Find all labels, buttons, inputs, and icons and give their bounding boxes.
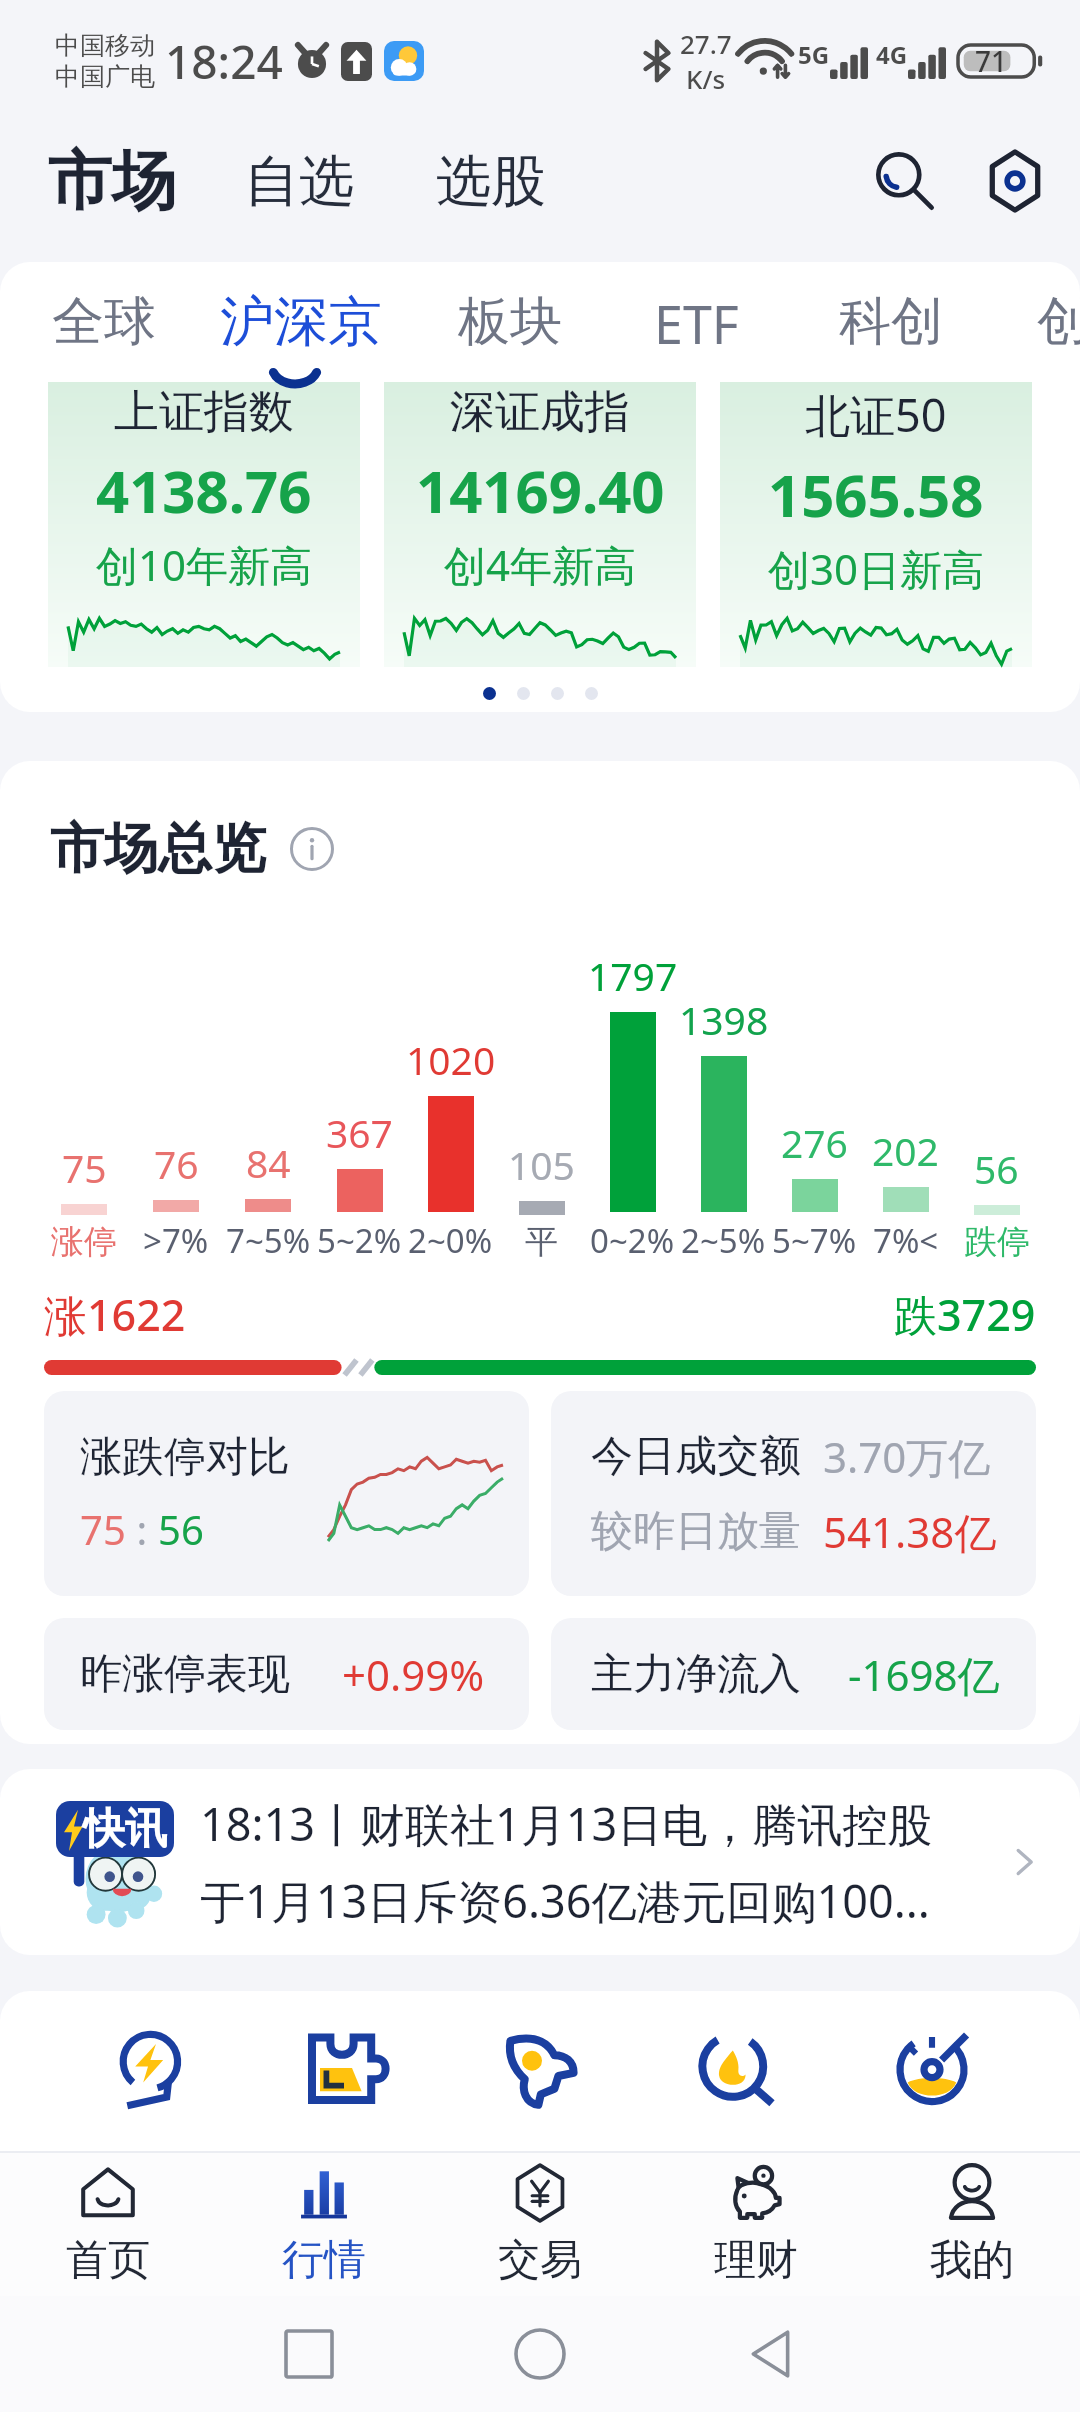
staticText: 涨跌停对比 [80, 1431, 290, 1484]
button[interactable]: Home [485, 2299, 595, 2409]
button[interactable]: Back [716, 2299, 826, 2409]
staticText: 快讯 [83, 1803, 167, 1856]
staticText: 跌3729 [894, 1285, 1036, 1344]
staticText: 中国移动 [55, 30, 155, 61]
staticText: 选股 [436, 147, 546, 216]
button[interactable]: 我的 [864, 2153, 1080, 2296]
button[interactable]: 沪深京 [220, 262, 382, 382]
staticText: 0~2% [590, 1218, 675, 1263]
button[interactable]: 涨跌停对比 [44, 1391, 529, 1596]
staticText: 全球 [52, 289, 156, 355]
button[interactable]: 市场 [48, 125, 176, 238]
staticText: 较昨日放量 [591, 1505, 801, 1558]
staticText: 首页 [66, 2234, 150, 2287]
staticText: 18:24 [165, 30, 283, 93]
staticText: 涨1622 [44, 1285, 186, 1344]
button[interactable]: 首页 [0, 2153, 216, 2296]
staticText: 我的 [930, 2234, 1014, 2287]
staticText: 27.7 [680, 26, 732, 61]
button[interactable]: Rocket [442, 1991, 638, 2151]
staticText: 昨涨停表现 [80, 1648, 290, 1701]
staticText: 541.38亿 [823, 1503, 997, 1560]
button[interactable]: 北证50 [720, 382, 1032, 667]
button[interactable]: 创 [1037, 263, 1080, 381]
staticText: 1020 [406, 1033, 496, 1086]
button[interactable]: 深证成指 [384, 382, 696, 667]
staticText: 科创 [839, 289, 943, 355]
staticText: +0.99% [342, 1646, 485, 1703]
button[interactable]: 快讯 [0, 1769, 1080, 1955]
staticText: 今日成交额 [591, 1430, 801, 1483]
staticText: 跌停 [964, 1221, 1030, 1263]
staticText: 75 [62, 1141, 107, 1194]
button[interactable]: 全球 [52, 263, 156, 381]
staticText: 1398 [679, 993, 769, 1046]
staticText: 理财 [714, 2234, 798, 2287]
staticText: 367 [326, 1106, 393, 1159]
staticText: 于1月13日斥资6.36亿港元回购100... [200, 1870, 930, 1931]
button[interactable]: Flash news [50, 1991, 246, 2151]
staticText: 71 [975, 42, 1008, 80]
staticText: 2~0% [408, 1218, 493, 1263]
staticText: 5~2% [317, 1218, 402, 1263]
staticText: 4138.76 [96, 451, 312, 530]
staticText: 创 [1037, 289, 1080, 355]
staticText: 202 [872, 1124, 939, 1177]
staticText: -1698亿 [848, 1646, 1000, 1703]
staticText: 84 [246, 1136, 291, 1189]
button[interactable]: 行情 [216, 2153, 432, 2296]
staticText: 76 [154, 1137, 199, 1190]
staticText: 创4年新高 [444, 536, 637, 593]
staticText: 板块 [458, 289, 562, 355]
staticText: K/s [686, 61, 726, 96]
staticText: 75 [80, 1502, 126, 1556]
staticText: 市场 [48, 141, 176, 222]
staticText: 市场总览 [50, 815, 266, 883]
staticText: 涨停 [51, 1221, 117, 1263]
button[interactable]: 自选 [244, 131, 354, 232]
staticText: 7%< [873, 1218, 939, 1263]
staticText: : [126, 1502, 158, 1556]
button[interactable]: Gauge [834, 1991, 1030, 2151]
staticText: 56 [974, 1142, 1019, 1195]
staticText: 中国广电 [55, 61, 155, 92]
staticText: >7% [143, 1218, 209, 1263]
staticText: 105 [508, 1138, 575, 1191]
button[interactable]: 昨涨停表现 [44, 1618, 529, 1730]
button[interactable]: 主力净流入 [551, 1618, 1036, 1730]
staticText: 276 [781, 1116, 848, 1169]
staticText: 沪深京 [220, 288, 382, 356]
button[interactable]: ETF [654, 262, 739, 382]
button[interactable]: 上证指数 [48, 382, 360, 667]
staticText: 14169.40 [416, 451, 665, 530]
staticText: 主力净流入 [591, 1648, 801, 1701]
button[interactable]: 板块 [458, 263, 562, 381]
staticText: 1565.58 [768, 455, 984, 534]
staticText: 2~5% [681, 1218, 766, 1263]
staticText: 创30日新高 [768, 540, 985, 597]
staticText: 5G [798, 38, 830, 71]
staticText: 行情 [282, 2234, 366, 2287]
staticText: 深证成指 [450, 384, 630, 441]
staticText: 上证指数 [114, 384, 294, 441]
staticText: 3.70万亿 [823, 1428, 991, 1485]
button[interactable]: Tools [246, 1991, 442, 2151]
button[interactable]: Scan [960, 126, 1070, 236]
staticText: 1797 [588, 949, 678, 1002]
button[interactable]: Search [850, 126, 960, 236]
button[interactable]: Recents [254, 2299, 364, 2409]
staticText: 18:13丨财联社1月13日电，腾讯控股 [200, 1793, 933, 1854]
staticText: 4G [876, 38, 908, 71]
staticText: 自选 [244, 147, 354, 216]
staticText: 平 [525, 1221, 558, 1263]
button[interactable]: 科创 [839, 263, 943, 381]
button[interactable]: 选股 [436, 131, 546, 232]
staticText: 5~7% [772, 1218, 857, 1263]
button[interactable]: 理财 [648, 2153, 864, 2296]
button[interactable]: Hot [638, 1991, 834, 2151]
button[interactable]: 交易 [432, 2153, 648, 2296]
staticText: 56 [158, 1502, 204, 1556]
staticText: 交易 [498, 2234, 582, 2287]
button[interactable]: 今日成交额 [551, 1391, 1036, 1596]
staticText: 创10年新高 [96, 536, 313, 593]
